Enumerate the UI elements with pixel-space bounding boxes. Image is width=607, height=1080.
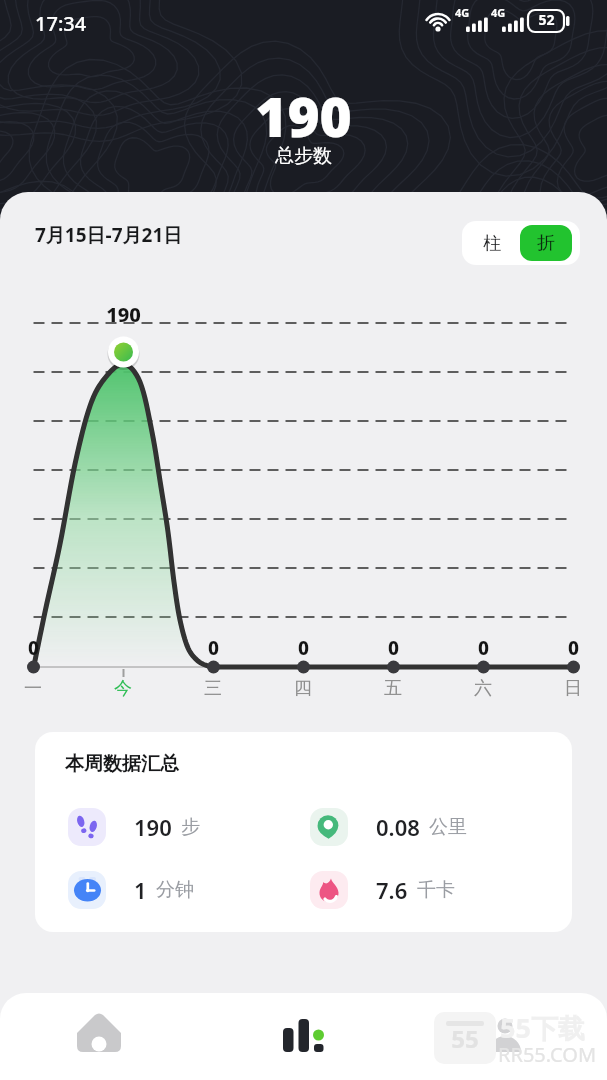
staticText: 三 <box>204 677 222 700</box>
staticText: 四 <box>294 677 312 700</box>
staticText: 0 <box>478 635 489 661</box>
button[interactable] <box>263 1001 343 1071</box>
staticText: 0 <box>28 635 39 661</box>
staticText: 0.08 <box>376 812 420 842</box>
staticText: 折 <box>537 232 555 255</box>
staticText: 4G <box>455 5 470 20</box>
staticText: 4G <box>491 5 506 20</box>
staticText: 190 <box>255 78 352 153</box>
staticText: RR55.COM <box>498 1041 597 1068</box>
staticText: 0 <box>298 635 309 661</box>
button[interactable]: 本周数据汇总 <box>35 732 572 932</box>
staticText: 17:34 <box>35 10 87 37</box>
staticText: 分钟 <box>156 878 194 902</box>
staticText: 190 <box>134 812 172 842</box>
staticText: 55 <box>451 1022 479 1055</box>
staticText: 一 <box>24 677 42 700</box>
staticText: 7.6 <box>376 875 408 905</box>
staticText: 今 <box>114 677 132 700</box>
staticText: 7月15日-7月21日 <box>35 222 183 248</box>
staticText: 190 <box>106 301 141 328</box>
staticText: 六 <box>474 677 492 700</box>
staticText: 55下载 <box>500 1009 585 1046</box>
staticText: 公里 <box>429 815 467 839</box>
staticText: 柱 <box>483 232 501 255</box>
staticText: 0 <box>208 635 219 661</box>
staticText: 五 <box>384 677 402 700</box>
staticText: 日 <box>564 677 582 700</box>
button[interactable]: 柱 <box>462 221 522 265</box>
staticText: 步 <box>181 815 200 839</box>
staticText: 52 <box>538 10 555 29</box>
staticText: 0 <box>568 635 579 661</box>
button[interactable] <box>465 1001 545 1071</box>
staticText: 0 <box>388 635 399 661</box>
staticText: 本周数据汇总 <box>65 752 179 776</box>
staticText: 千卡 <box>417 878 455 902</box>
button[interactable]: 折 <box>520 225 572 261</box>
staticText: 总步数 <box>275 144 332 168</box>
button[interactable] <box>59 1001 139 1071</box>
staticText: 1 <box>134 875 147 905</box>
